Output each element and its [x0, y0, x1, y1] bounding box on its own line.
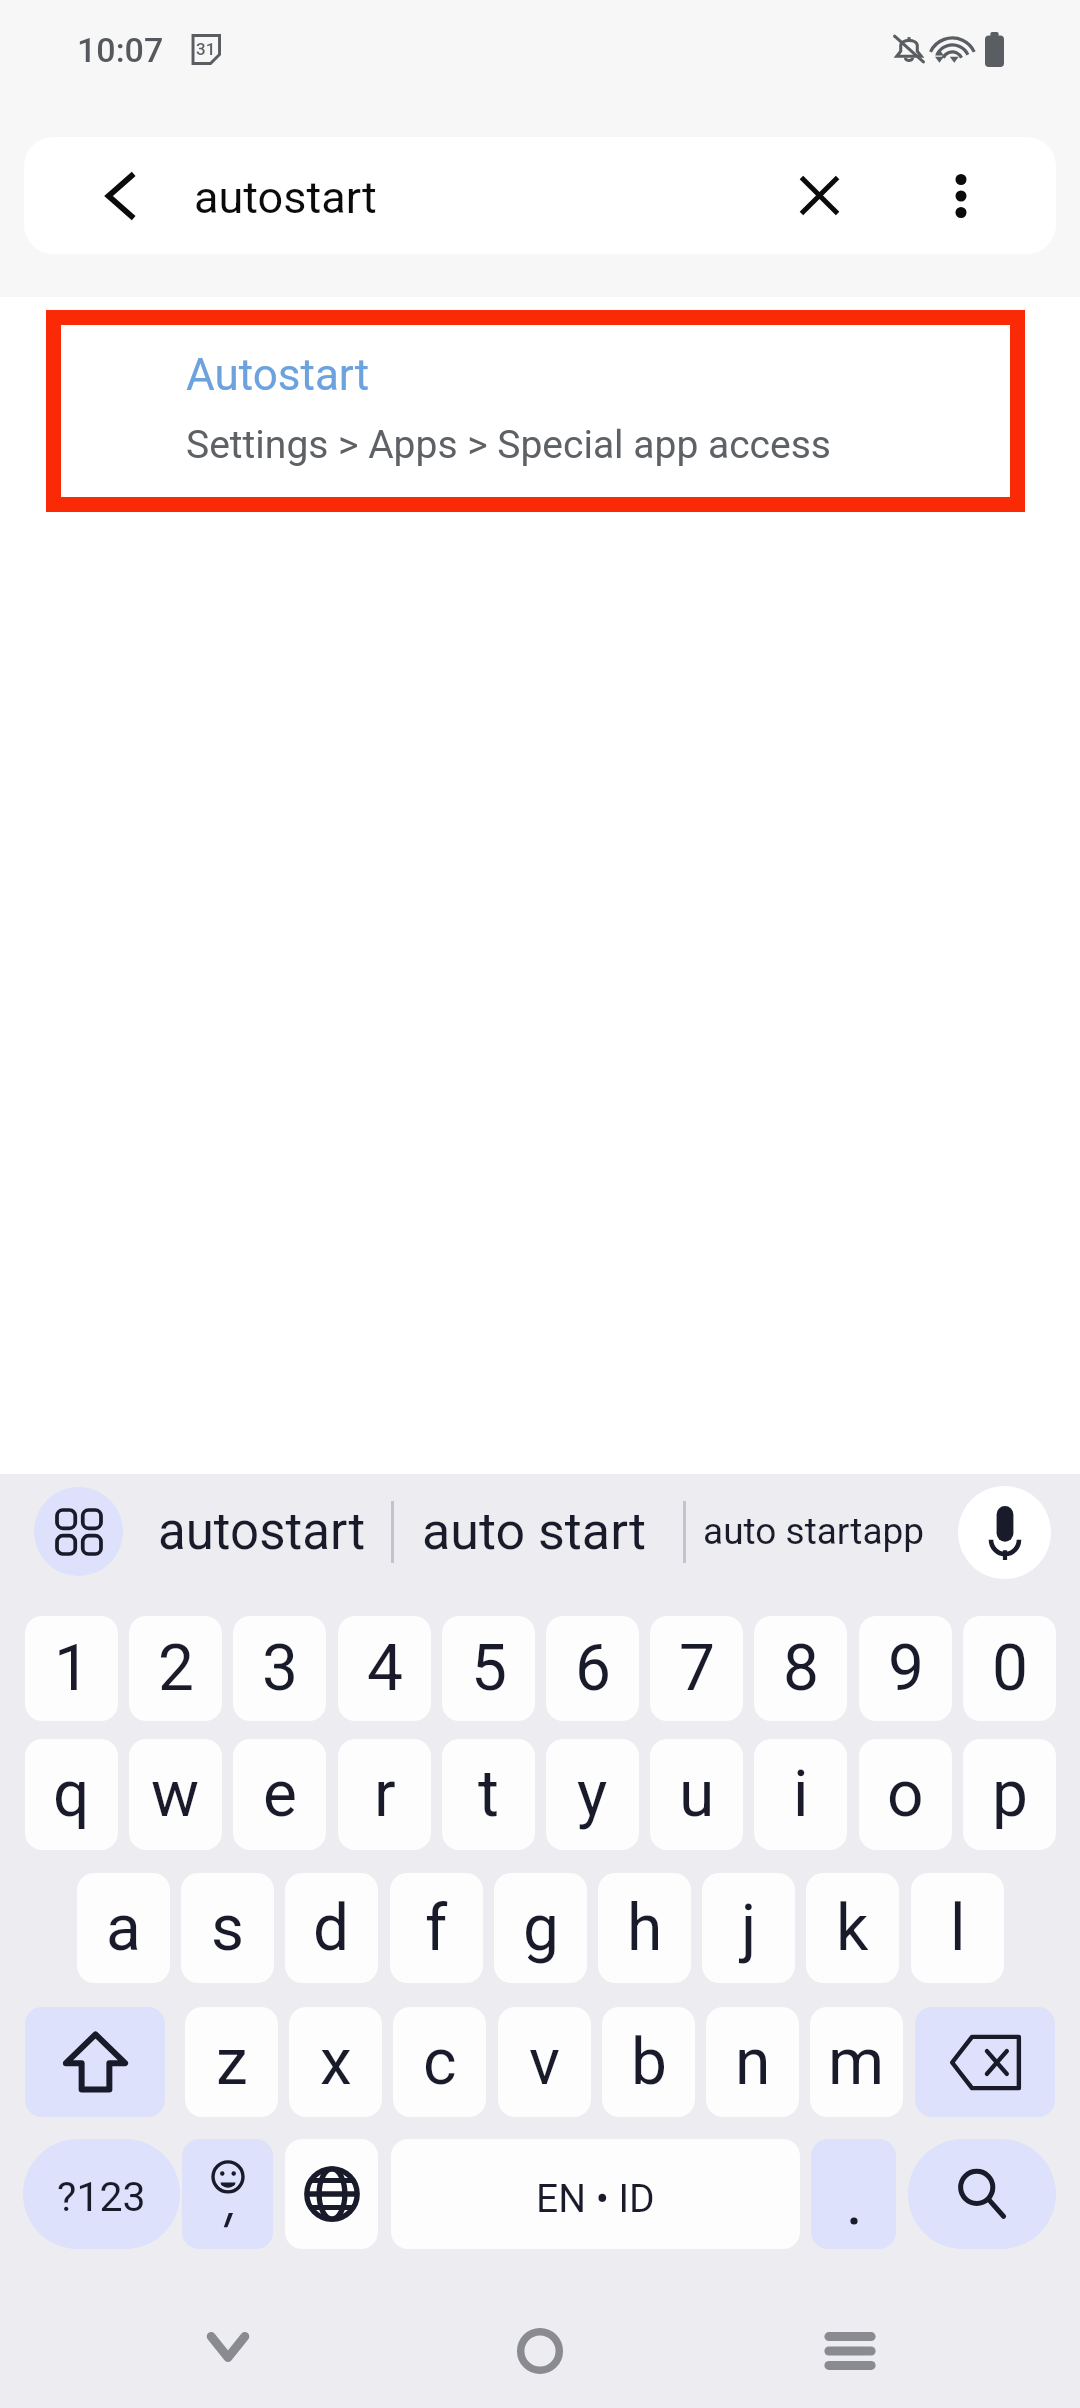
staticText: u	[679, 1757, 715, 1832]
button[interactable]: EN • ID	[391, 2139, 800, 2249]
button[interactable]: auto startapp	[703, 1487, 925, 1576]
button[interactable]: More options	[906, 137, 1016, 254]
button[interactable]: i	[754, 1739, 847, 1850]
button[interactable]: t	[442, 1739, 535, 1850]
button[interactable]: w	[129, 1739, 222, 1850]
button[interactable]: d	[285, 1873, 378, 1983]
staticText: c	[423, 2025, 457, 2100]
button[interactable]: 2	[129, 1616, 222, 1721]
button[interactable]: 9	[859, 1616, 952, 1721]
staticText: 4	[367, 1631, 403, 1706]
button[interactable]: auto start	[422, 1487, 647, 1576]
staticText: e	[263, 1757, 297, 1832]
button[interactable]	[811, 2139, 896, 2249]
staticText: v	[529, 2025, 560, 2100]
staticText: a	[106, 1891, 141, 1966]
button[interactable]: c	[393, 2007, 486, 2117]
button[interactable]: u	[650, 1739, 743, 1850]
button[interactable]: v	[498, 2007, 591, 2117]
staticText: q	[53, 1757, 90, 1832]
button[interactable]: ?123	[23, 2139, 180, 2249]
button[interactable]: Voice input	[958, 1486, 1051, 1579]
button[interactable]: l	[911, 1873, 1004, 1983]
button[interactable]: m	[810, 2007, 903, 2117]
button[interactable]: h	[598, 1873, 691, 1983]
button[interactable]: z	[185, 2007, 278, 2117]
button[interactable]: autostart	[158, 1487, 366, 1576]
button[interactable]: k	[806, 1873, 899, 1983]
button[interactable]: Home	[480, 2291, 600, 2408]
button[interactable]: Emoji	[182, 2139, 273, 2249]
staticText: EN • ID	[536, 2176, 655, 2222]
button[interactable]: 6	[546, 1616, 639, 1721]
staticText: 1	[54, 1631, 90, 1706]
staticText: p	[992, 1757, 1028, 1832]
staticText: Settings > Apps > Special app access	[186, 422, 831, 468]
button[interactable]: 4	[338, 1616, 431, 1721]
staticText: 8	[783, 1631, 819, 1706]
button[interactable]: Back	[168, 2287, 288, 2407]
staticText: 5	[471, 1631, 507, 1706]
button[interactable]: Search	[908, 2139, 1056, 2249]
staticText: ?123	[57, 2173, 146, 2221]
staticText: 7	[679, 1631, 715, 1706]
button[interactable]: Recent apps	[790, 2291, 910, 2408]
button[interactable]: g	[494, 1873, 587, 1983]
staticText: y	[577, 1757, 608, 1832]
staticText: o	[887, 1757, 924, 1832]
button[interactable]: r	[338, 1739, 431, 1850]
staticText: auto start	[422, 1501, 647, 1562]
button[interactable]: Clear search	[764, 137, 874, 254]
staticText: m	[828, 2025, 885, 2100]
button[interactable]: y	[546, 1739, 639, 1850]
button[interactable]: s	[181, 1873, 274, 1983]
button[interactable]: 1	[25, 1616, 118, 1721]
button[interactable]: Keyboard toolbar	[34, 1487, 123, 1576]
button[interactable]: 8	[754, 1616, 847, 1721]
staticText: f	[425, 1891, 448, 1966]
button[interactable]: q	[25, 1739, 118, 1850]
button[interactable]: Autostart	[46, 310, 1025, 512]
staticText: 2	[158, 1631, 194, 1706]
button[interactable]: Shift	[25, 2007, 165, 2117]
staticText: h	[627, 1891, 663, 1966]
staticText: r	[374, 1757, 396, 1832]
button[interactable]: a	[77, 1873, 170, 1983]
staticText: k	[836, 1891, 869, 1966]
staticText: g	[523, 1891, 559, 1966]
staticText: 0	[992, 1631, 1028, 1706]
staticText: autostart	[194, 171, 377, 224]
staticText: x	[320, 2025, 352, 2100]
staticText: auto startapp	[703, 1510, 925, 1553]
button[interactable]: f	[390, 1873, 483, 1983]
staticText: i	[793, 1757, 809, 1832]
button[interactable]: 3	[233, 1616, 326, 1721]
staticText: Autostart	[186, 349, 370, 401]
staticText: l	[950, 1891, 966, 1966]
button[interactable]: p	[963, 1739, 1056, 1850]
staticText: 6	[575, 1631, 611, 1706]
staticText: 31	[196, 39, 216, 59]
staticText: 9	[888, 1631, 924, 1706]
button[interactable]: 7	[650, 1616, 743, 1721]
button[interactable]: b	[602, 2007, 695, 2117]
button[interactable]: j	[702, 1873, 795, 1983]
staticText: d	[313, 1891, 350, 1966]
button[interactable]: x	[289, 2007, 382, 2117]
staticText: b	[631, 2025, 667, 2100]
button[interactable]: 0	[963, 1616, 1056, 1721]
button[interactable]: 5	[442, 1616, 535, 1721]
button[interactable]: e	[233, 1739, 326, 1850]
staticText: 3	[262, 1631, 298, 1706]
staticText: w	[151, 1757, 200, 1832]
button[interactable]: o	[859, 1739, 952, 1850]
button[interactable]: Change language	[285, 2139, 378, 2249]
button[interactable]: n	[706, 2007, 799, 2117]
staticText: 10:07	[77, 30, 164, 70]
staticText: s	[211, 1891, 245, 1966]
staticText: z	[216, 2025, 248, 2100]
button[interactable]: Back	[68, 137, 172, 254]
staticText: n	[735, 2025, 771, 2100]
staticText: t	[478, 1757, 499, 1832]
button[interactable]: Backspace	[915, 2007, 1055, 2117]
